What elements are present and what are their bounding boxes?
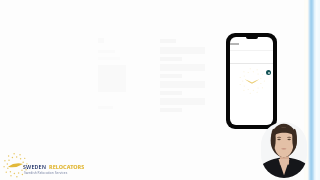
staticText: RELOCATORS: [49, 163, 85, 170]
staticText: Swedish Relocation Services: [24, 170, 68, 174]
button[interactable]: Chat: [266, 70, 271, 75]
staticText: SWEDEN: [23, 163, 47, 170]
